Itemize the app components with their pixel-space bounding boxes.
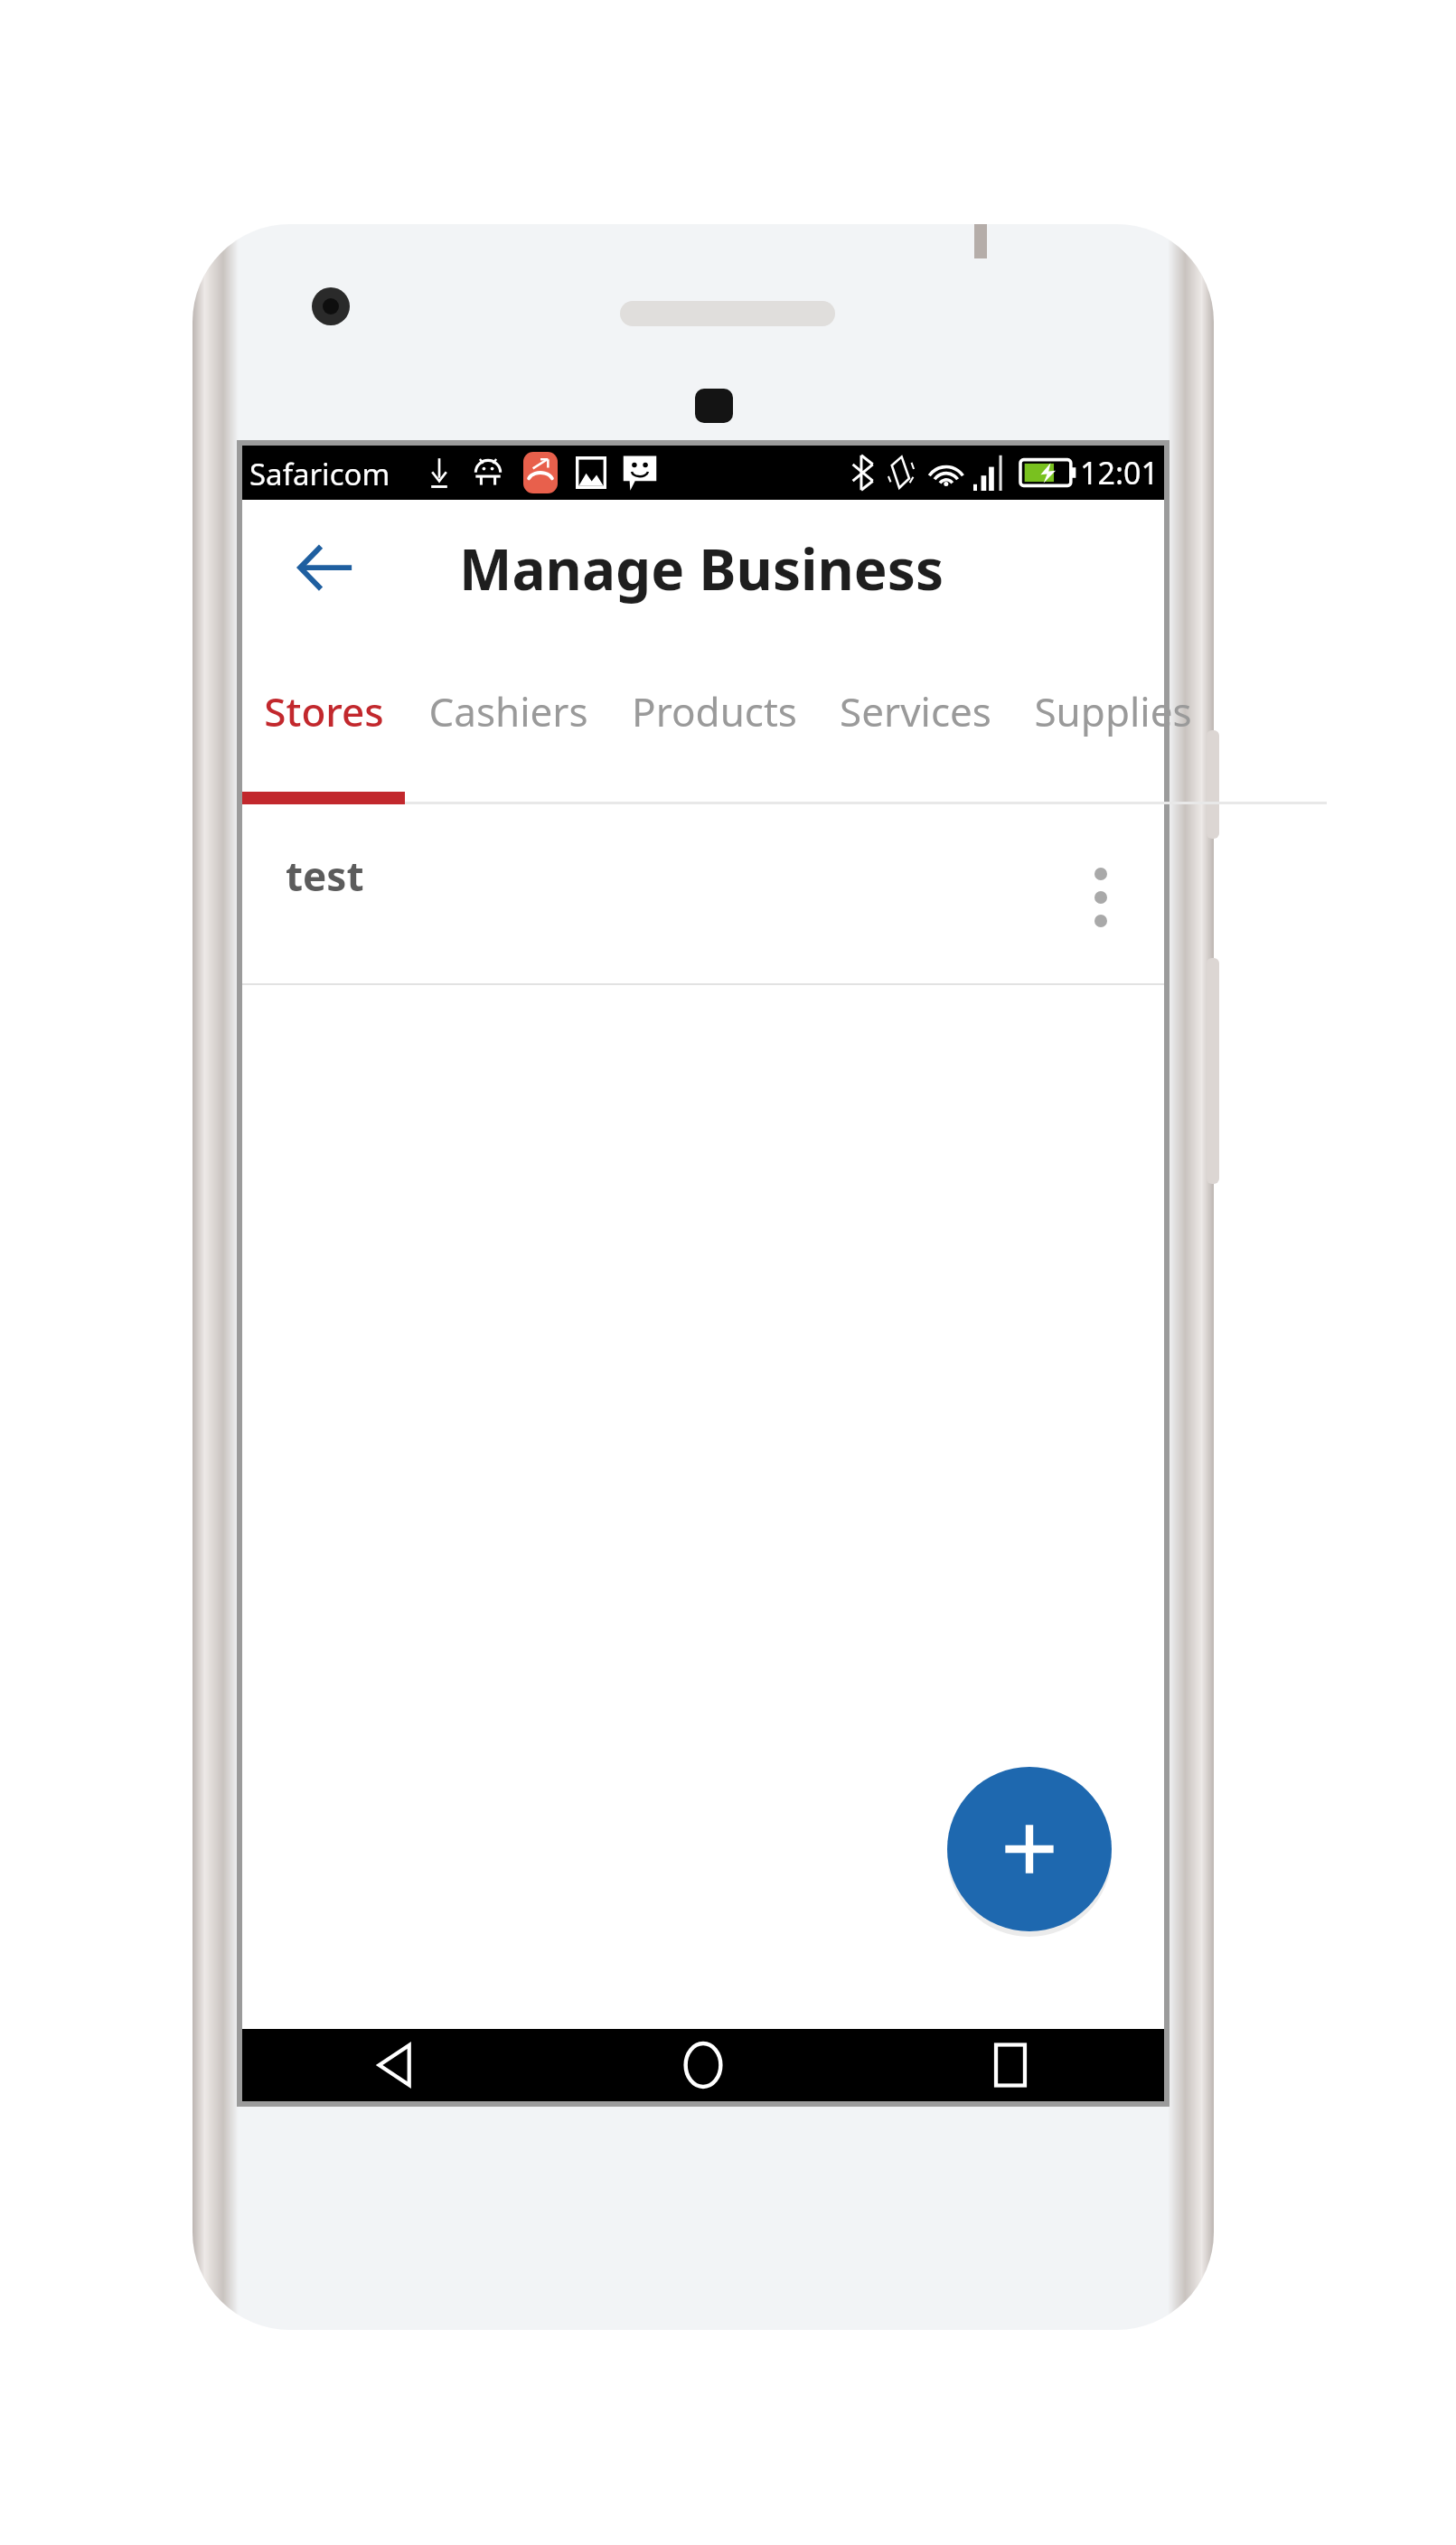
button[interactable]: Back bbox=[268, 509, 383, 625]
button[interactable]: Stores bbox=[242, 633, 405, 804]
button[interactable]: Services bbox=[817, 633, 1014, 804]
staticText: Stores bbox=[264, 684, 384, 738]
button[interactable]: test bbox=[242, 804, 1164, 983]
button[interactable]: Cashiers bbox=[405, 633, 611, 804]
staticText: Products bbox=[632, 684, 797, 738]
button[interactable]: Supplies bbox=[1014, 633, 1211, 804]
button[interactable]: Add bbox=[947, 1767, 1112, 1931]
button[interactable]: Recent apps bbox=[857, 2029, 1164, 2101]
button[interactable]: Products bbox=[611, 633, 817, 804]
staticText: Manage Business bbox=[459, 531, 944, 606]
staticText: test bbox=[286, 849, 364, 903]
button[interactable]: Home bbox=[550, 2029, 857, 2101]
button[interactable]: More options bbox=[1057, 843, 1144, 952]
staticText: 12:01 bbox=[1080, 452, 1159, 493]
button[interactable]: Back bbox=[242, 2029, 550, 2101]
staticText: Services bbox=[840, 684, 991, 738]
staticText: Safaricom bbox=[249, 454, 390, 494]
staticText: Supplies bbox=[1034, 684, 1192, 738]
staticText: Cashiers bbox=[428, 684, 588, 738]
